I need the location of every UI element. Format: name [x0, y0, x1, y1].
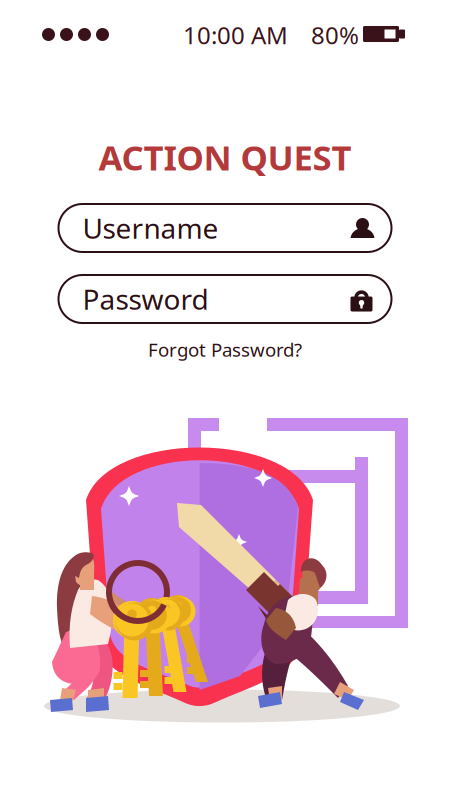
staticText: Forgot Password?: [148, 337, 302, 362]
staticText: 10:00 AM: [183, 19, 288, 51]
staticText: ACTION QUEST: [98, 134, 351, 180]
button[interactable]: Password: [58, 275, 391, 323]
button[interactable]: Forgot Password?: [148, 337, 302, 362]
staticText: Password: [82, 280, 208, 318]
button[interactable]: Username: [58, 204, 391, 252]
staticText: 80%: [311, 19, 359, 51]
staticText: Username: [82, 209, 218, 247]
